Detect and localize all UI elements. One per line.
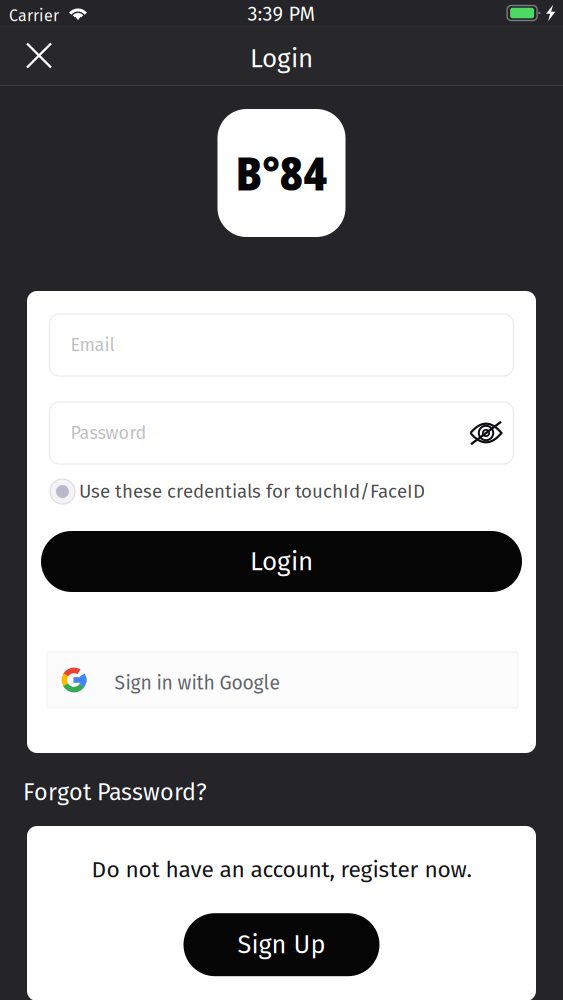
staticText: Email (70, 334, 114, 356)
staticText: Login (250, 546, 313, 577)
staticText: B°84 (235, 142, 327, 204)
staticText: Do not have an account, register now. (91, 856, 471, 883)
staticText: Carrier (9, 6, 59, 26)
staticText: 3:39 PM (247, 2, 315, 26)
staticText: Login (250, 43, 313, 74)
staticText: Password (70, 422, 146, 444)
button[interactable]: Forgot Password? (0, 753, 563, 826)
staticText: Sign Up (237, 929, 325, 960)
staticText: Sign in with Google (114, 671, 280, 695)
button[interactable]: Sign Up (183, 913, 379, 976)
staticText: Use these credentials for touchId/FaceID (79, 480, 425, 503)
button[interactable]: Use these credentials for touchId/FaceID (27, 464, 536, 504)
button[interactable]: Show password (469, 421, 513, 445)
button[interactable]: Sign in with Google (45, 652, 518, 708)
button[interactable]: Close (17, 33, 61, 77)
staticText: Forgot Password? (23, 778, 207, 806)
button[interactable]: Login (41, 531, 522, 592)
